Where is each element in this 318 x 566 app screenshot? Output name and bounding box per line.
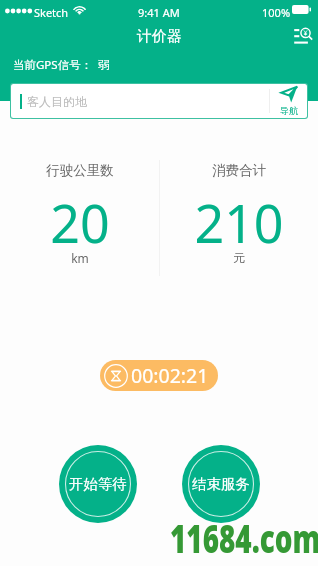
button[interactable]: 结束服务: [182, 445, 260, 523]
staticText: 210: [194, 187, 284, 258]
staticText: 元: [233, 250, 245, 265]
button[interactable]: 导航: [270, 84, 307, 118]
button[interactable]: 客人目的地: [11, 84, 269, 118]
staticText: 11684.com: [170, 512, 318, 564]
staticText: 结束服务: [192, 475, 250, 493]
staticText: 弱: [98, 58, 110, 72]
staticText: 100%: [262, 5, 291, 20]
staticText: 客人目的地: [27, 94, 87, 109]
staticText: 开始等待: [69, 475, 127, 493]
staticText: 00:02:21: [131, 362, 209, 389]
staticText: km: [71, 250, 89, 266]
button[interactable]: Search bills: [288, 26, 314, 48]
staticText: 20: [50, 187, 110, 258]
staticText: 导航: [280, 105, 298, 116]
staticText: 当前GPS信号：: [13, 57, 93, 73]
button[interactable]: 00:02:21: [100, 360, 218, 391]
staticText: 行驶公里数: [46, 162, 114, 179]
staticText: 9:41 AM: [138, 5, 180, 20]
staticText: 计价器: [137, 27, 182, 46]
staticText: 消费合计: [212, 162, 266, 179]
staticText: Sketch: [34, 5, 69, 20]
button[interactable]: 开始等待: [59, 445, 137, 523]
